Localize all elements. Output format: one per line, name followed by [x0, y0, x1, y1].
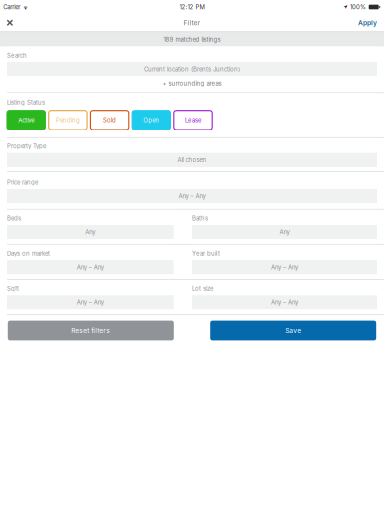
- staticText: Days on market: [7, 250, 50, 257]
- staticText: Any – Any: [77, 264, 104, 271]
- staticText: Active: [18, 117, 34, 124]
- button[interactable]: Any – Any: [7, 295, 174, 309]
- staticText: Sqft: [7, 285, 19, 292]
- staticText: Open: [143, 117, 159, 124]
- staticText: Year built: [192, 250, 220, 257]
- staticText: Property Type: [7, 142, 46, 150]
- staticText: 12:12 PM: [179, 3, 204, 11]
- staticText: Lot size: [192, 285, 213, 292]
- staticText: Listing Status: [7, 99, 45, 106]
- staticText: Pending: [56, 117, 80, 124]
- button[interactable]: Close: [0, 15, 19, 31]
- button[interactable]: Save: [210, 321, 376, 340]
- staticText: Filter: [183, 19, 200, 27]
- staticText: Any – Any: [271, 299, 298, 306]
- staticText: Any – Any: [178, 192, 205, 200]
- button[interactable]: Any – Any: [192, 260, 377, 274]
- staticText: Lease: [185, 117, 201, 124]
- staticText: Any: [85, 228, 95, 236]
- staticText: Carrier: [3, 3, 20, 11]
- button[interactable]: + surrounding areas: [7, 81, 377, 87]
- staticText: Any – Any: [271, 264, 298, 271]
- button[interactable]: Reset filters: [8, 321, 174, 340]
- button[interactable]: Open: [132, 111, 170, 130]
- button[interactable]: Any – Any: [7, 189, 377, 203]
- button[interactable]: Pending: [49, 111, 87, 130]
- staticText: 100%: [350, 3, 366, 11]
- staticText: All chosen: [177, 156, 206, 163]
- staticText: Apply: [358, 19, 377, 27]
- button[interactable]: Any – Any: [7, 260, 174, 274]
- button[interactable]: Lease: [174, 111, 212, 130]
- button[interactable]: Sold: [90, 111, 129, 130]
- staticText: Sold: [103, 117, 116, 124]
- staticText: Any: [279, 228, 289, 236]
- staticText: Search: [7, 52, 27, 59]
- button[interactable]: Any – Any: [192, 295, 377, 309]
- staticText: + surrounding areas: [162, 80, 221, 87]
- staticText: Any – Any: [77, 299, 104, 306]
- staticText: 189 matched listings: [163, 36, 220, 43]
- staticText: Baths: [192, 215, 208, 222]
- button[interactable]: Current location (Brents Junction): [7, 62, 377, 76]
- button[interactable]: All chosen: [7, 153, 377, 167]
- button[interactable]: Any: [192, 225, 377, 239]
- staticText: Save: [285, 326, 301, 335]
- staticText: Current location (Brents Junction): [144, 66, 240, 73]
- staticText: Price range: [7, 179, 38, 186]
- button[interactable]: Any: [7, 225, 174, 239]
- button[interactable]: Apply: [352, 14, 384, 31]
- staticText: Reset filters: [71, 326, 110, 335]
- button[interactable]: Active: [7, 111, 45, 130]
- staticText: Beds: [7, 215, 21, 222]
